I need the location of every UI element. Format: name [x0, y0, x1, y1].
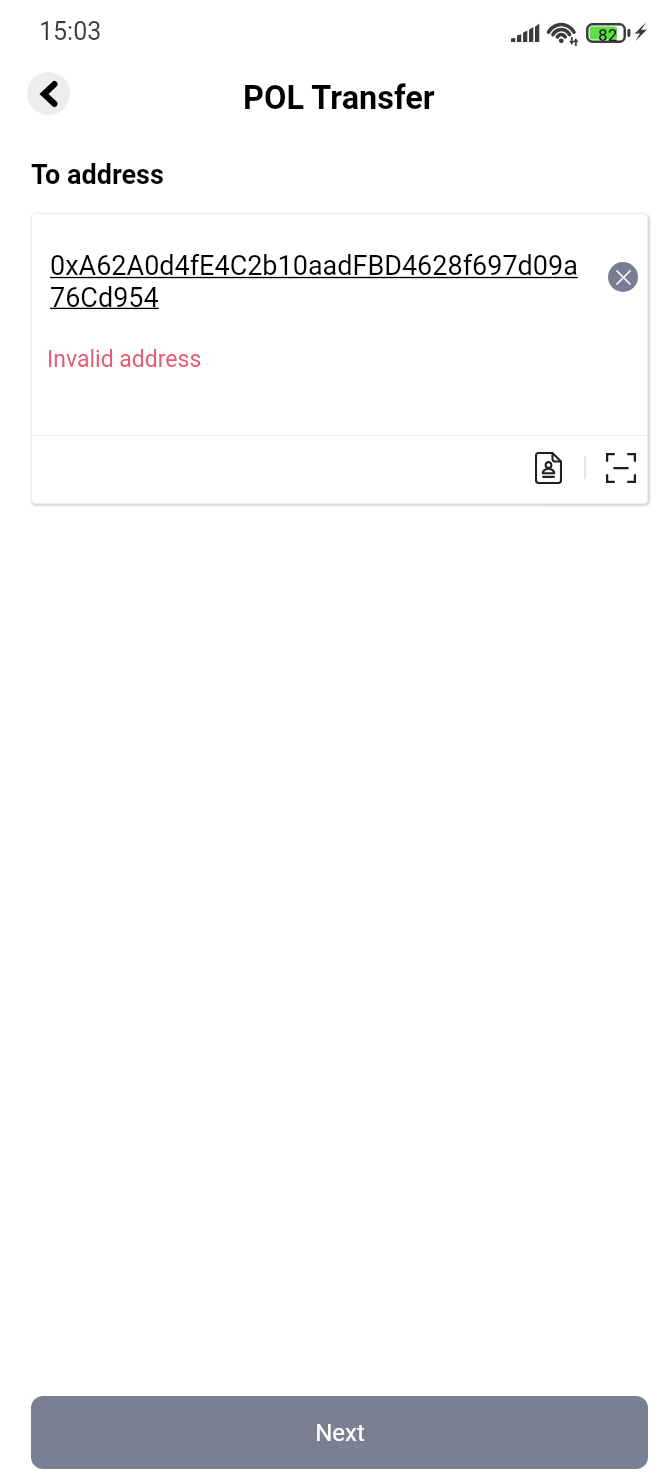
button[interactable]: Clear address — [608, 262, 638, 292]
button[interactable]: Choose from contacts — [519, 439, 577, 497]
button[interactable]: Recipient address field — [32, 214, 647, 433]
staticText: Next — [315, 1419, 365, 1447]
staticText: 0xA62A0d4fE4C2b10aadFBD4628f697d09a76Cd9… — [50, 250, 591, 313]
staticText: To address — [31, 159, 164, 191]
button[interactable]: Scan QR code — [592, 439, 648, 497]
button[interactable]: Next — [31, 1396, 648, 1469]
staticText: 15:03 — [39, 17, 102, 46]
button[interactable]: Back — [27, 72, 70, 115]
staticText: 82 — [598, 25, 618, 45]
staticText: Invalid address — [47, 346, 202, 373]
staticText: POL Transfer — [243, 79, 435, 117]
